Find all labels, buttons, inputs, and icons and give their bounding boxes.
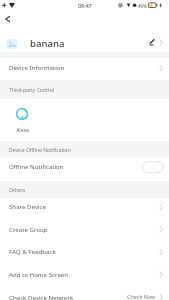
staticText: Check Now — [127, 293, 156, 300]
button[interactable]: Check Device Network — [0, 288, 169, 300]
button[interactable]: Back — [1, 13, 13, 25]
button[interactable]: Offline Notification — [0, 157, 169, 181]
staticText: 09:47 — [78, 2, 92, 9]
staticText: banana — [30, 37, 65, 50]
staticText: Device Information — [9, 63, 65, 71]
button[interactable]: banana — [0, 27, 169, 52]
staticText: FAQ & Feedback — [9, 247, 56, 255]
button[interactable]: Add to Home Screen — [0, 265, 169, 288]
button[interactable]: Create Group — [0, 220, 169, 243]
staticText: Third-party Control — [9, 87, 55, 94]
staticText: Others — [9, 187, 26, 194]
button[interactable]: Alexa — [15, 107, 29, 134]
staticText: Create Group — [9, 225, 48, 233]
staticText: Offline Notification — [9, 162, 64, 170]
button[interactable]: Edit device name — [146, 36, 158, 48]
staticText: Alexa — [16, 127, 29, 134]
staticText: Add to Home Screen — [9, 270, 69, 278]
staticText: Share Device — [9, 202, 47, 210]
button[interactable]: Device Information — [0, 58, 169, 80]
button[interactable]: Share Device — [0, 198, 169, 220]
staticText: Check Device Network — [9, 293, 74, 300]
button[interactable]: FAQ & Feedback — [0, 243, 169, 265]
staticText: 46% — [138, 3, 147, 9]
staticText: Device Offline Notification — [9, 147, 71, 154]
